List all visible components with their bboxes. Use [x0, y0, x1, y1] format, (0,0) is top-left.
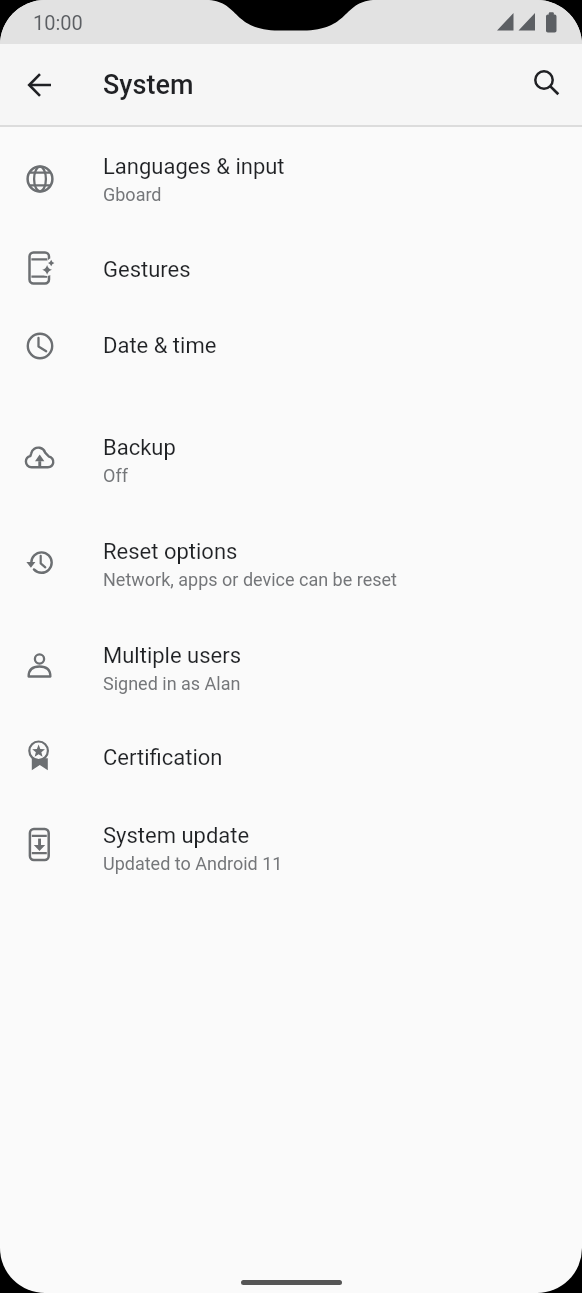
staticText: 10:00: [33, 11, 83, 34]
staticText: Date & time: [103, 333, 217, 359]
button[interactable]: [520, 61, 568, 109]
staticText: Gestures: [103, 257, 191, 283]
staticText: Certification: [103, 745, 223, 771]
staticText: System: [103, 69, 194, 101]
staticText: Gboard: [103, 184, 162, 205]
staticText: Multiple users: [103, 643, 242, 669]
staticText: Network, apps or device can be reset: [103, 569, 397, 590]
button[interactable]: [16, 61, 64, 109]
button[interactable]: System update: [0, 796, 582, 900]
staticText: Off: [103, 465, 128, 486]
button[interactable]: Gestures: [0, 232, 582, 308]
staticText: Languages & input: [103, 154, 285, 180]
staticText: System update: [103, 823, 250, 849]
button[interactable]: Multiple users: [0, 616, 582, 720]
button[interactable]: Date & time: [0, 308, 582, 384]
staticText: Updated to Android 11: [103, 853, 283, 874]
staticText: Reset options: [103, 539, 238, 565]
button[interactable]: Languages & input: [0, 126, 582, 232]
button[interactable]: Reset options: [0, 512, 582, 616]
staticText: Backup: [103, 435, 176, 461]
button[interactable]: Backup: [0, 408, 582, 512]
staticText: Signed in as Alan: [103, 673, 241, 694]
button[interactable]: Certification: [0, 720, 582, 796]
